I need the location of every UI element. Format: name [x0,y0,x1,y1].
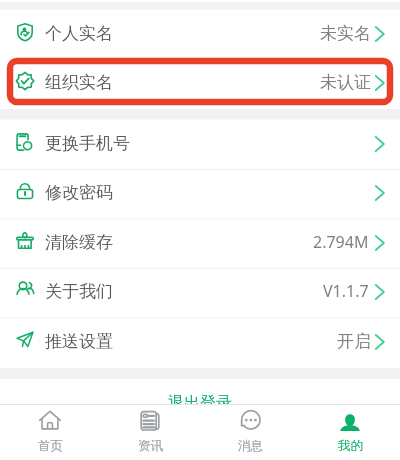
staticText: 首页 [38,438,63,454]
button[interactable]: 消息 [200,405,300,460]
staticText: 修改密码 [45,182,113,203]
staticText: 个人实名 [45,23,113,44]
button[interactable]: 个人实名 [0,10,400,60]
button[interactable]: 退出登录 [0,379,400,404]
staticText: 开启 [337,331,371,352]
staticText: 关于我们 [45,281,113,302]
staticText: 清除缓存 [45,232,113,253]
staticText: V1.1.7 [323,280,369,302]
staticText: 组织实名 [45,72,113,93]
button[interactable]: 更换手机号 [0,120,400,170]
button[interactable]: 我的 [300,405,400,460]
button[interactable]: 首页 [0,405,100,460]
staticText: 未实名 [320,23,371,44]
staticText: 消息 [238,438,263,454]
button[interactable]: 修改密码 [0,169,400,219]
staticText: 2.794M [313,231,369,253]
button[interactable]: 资讯 [100,405,200,460]
staticText: 推送设置 [45,331,113,352]
button[interactable]: 关于我们 [0,268,400,318]
staticText: 更换手机号 [45,133,130,154]
staticText: 未认证 [320,72,371,93]
staticText: 我的 [338,438,363,454]
staticText: 退出登录 [168,393,232,413]
staticText: 资讯 [138,438,163,454]
button[interactable]: 推送设置 [0,318,400,368]
button[interactable]: 组织实名 [0,59,400,109]
button[interactable]: 清除缓存 [0,219,400,269]
